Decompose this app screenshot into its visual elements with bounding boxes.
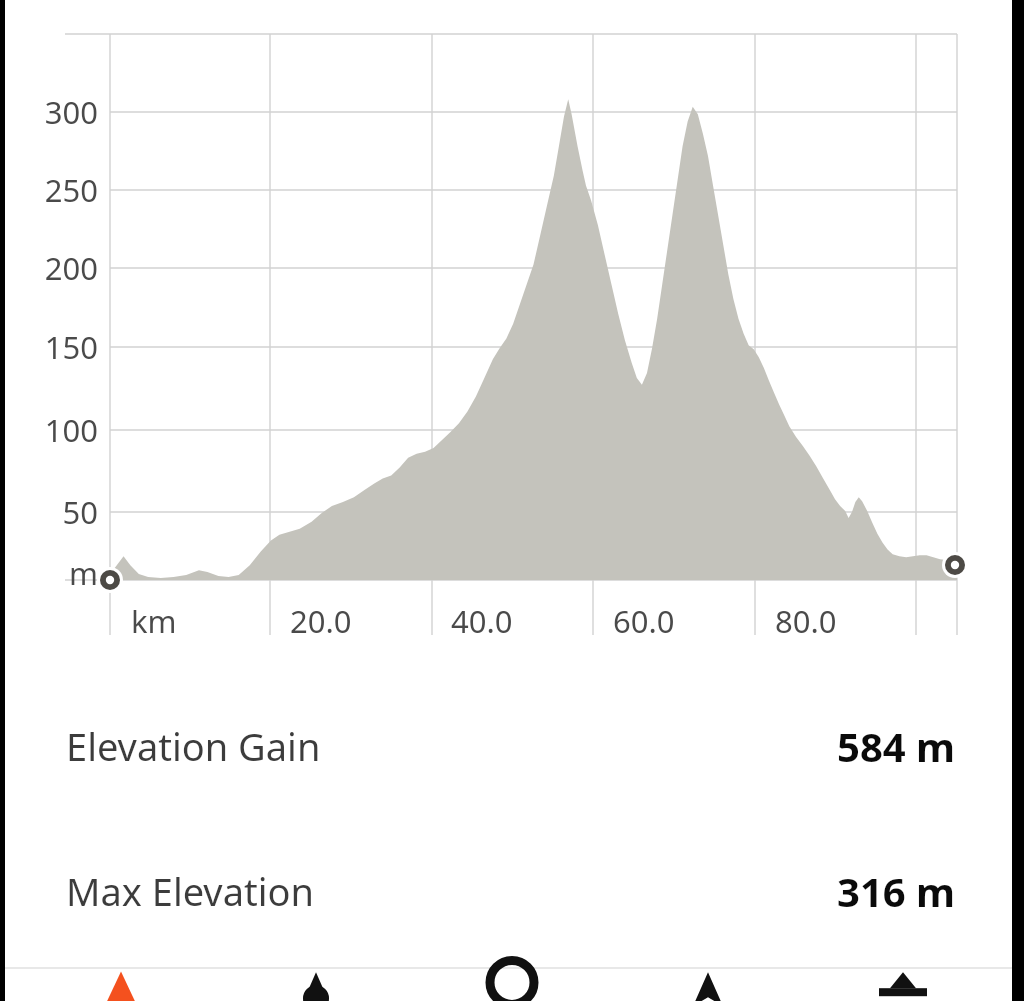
staticText: 60.0 [613, 600, 675, 642]
staticText: m [0, 552, 98, 594]
staticText: 40.0 [451, 600, 513, 642]
staticText: 50 [0, 491, 98, 533]
staticText: 80.0 [775, 600, 837, 642]
staticText: 316 m [837, 864, 956, 918]
button[interactable]: Navigate [633, 969, 783, 1001]
button[interactable]: Profile [828, 969, 978, 1001]
staticText: 250 [0, 169, 98, 211]
staticText: 200 [0, 247, 98, 289]
button[interactable]: Routes [46, 969, 196, 1001]
button[interactable]: Max Elevation [0, 861, 1024, 921]
staticText: Elevation Gain [66, 720, 321, 772]
staticText: km [131, 600, 177, 642]
button[interactable]: Discover [241, 969, 391, 1001]
staticText: 150 [0, 326, 98, 368]
staticText: 300 [0, 91, 98, 133]
staticText: 100 [0, 409, 98, 451]
staticText: 584 m [837, 719, 956, 773]
button[interactable]: Elevation Gain [0, 716, 1024, 776]
staticText: Max Elevation [66, 865, 314, 917]
button[interactable]: Record [437, 969, 587, 1001]
staticText: 20.0 [290, 600, 352, 642]
